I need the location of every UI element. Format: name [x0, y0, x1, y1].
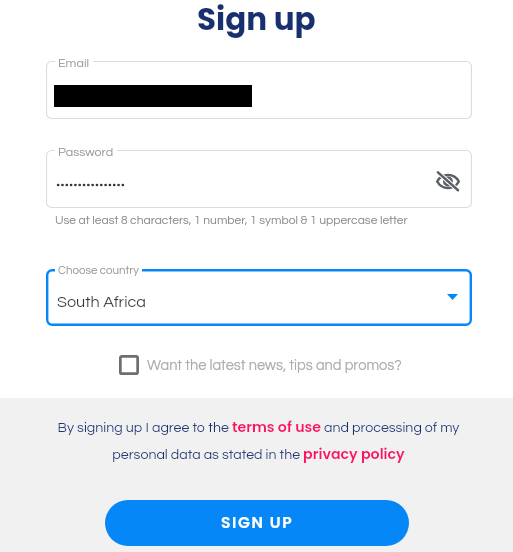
staticText: South Africa [57, 294, 146, 311]
button[interactable]: Want the latest news, tips and promos? [119, 355, 402, 375]
staticText: Email [58, 57, 90, 70]
button[interactable]: By signing up I agree to the terms of us… [32, 417, 485, 464]
staticText: Want the latest news, tips and promos? [147, 358, 402, 373]
button[interactable]: South Africa [46, 269, 472, 326]
button[interactable]: Show password [436, 169, 460, 193]
button[interactable]: Email [46, 61, 472, 119]
staticText: SIGN UP [221, 512, 294, 534]
staticText: Sign up [197, 0, 316, 40]
button[interactable]: SIGN UP [105, 500, 409, 546]
staticText: Choose country [58, 265, 139, 277]
staticText: Use at least 8 characters, 1 number, 1 s… [55, 214, 408, 226]
staticText: Password [58, 146, 114, 159]
button[interactable]: Show password [46, 150, 472, 208]
